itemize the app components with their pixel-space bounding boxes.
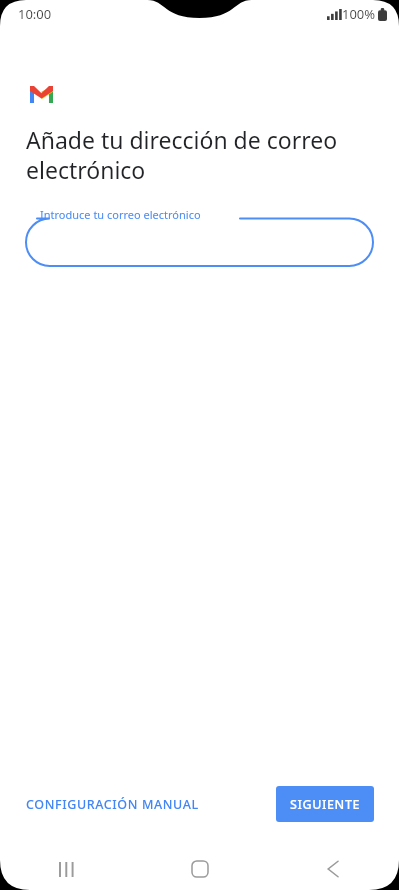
staticText: 100% [342,5,376,23]
button[interactable]: CONFIGURACIÓN MANUAL [26,790,199,819]
staticText: CONFIGURACIÓN MANUAL [26,796,199,813]
button[interactable]: Recents [0,848,133,890]
button[interactable]: Home [133,848,266,890]
staticText: Añade tu dirección de correo electrónico [26,124,355,186]
button[interactable]: SIGUIENTE [276,786,374,822]
button[interactable]: Introduce tu correo electrónico [26,207,373,269]
staticText: 10:00 [18,5,52,23]
button[interactable]: Back [266,848,399,890]
staticText: Introduce tu correo electrónico [40,207,201,222]
staticText: SIGUIENTE [290,796,361,813]
